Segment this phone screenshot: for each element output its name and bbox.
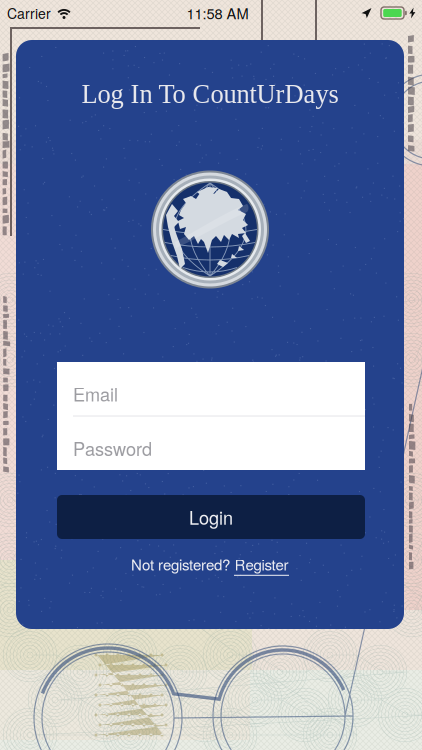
staticText: Password <box>73 435 152 461</box>
staticText: Email <box>73 381 118 407</box>
staticText: Log In To CountUrDays <box>81 79 338 109</box>
staticText: 11:58 AM <box>186 2 248 23</box>
staticText: Carrier <box>7 3 51 23</box>
button[interactable]: Not registered? <box>16 554 404 574</box>
staticText: Register <box>234 553 288 575</box>
staticText: Login <box>189 504 233 530</box>
staticText: Not registered? <box>131 553 234 575</box>
button[interactable]: Login <box>57 495 365 539</box>
